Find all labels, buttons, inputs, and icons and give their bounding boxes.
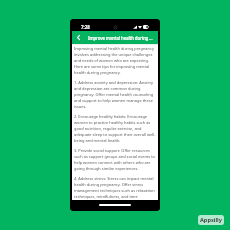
staticText: 3. Provide social support: Offer resourc…: [74, 148, 156, 171]
button[interactable]: Appsilly: [198, 215, 224, 225]
staticText: Improve mental health during …: [88, 35, 153, 41]
staticText: 7:28: [81, 24, 90, 30]
staticText: 4. Address stress: Stress can impact men…: [74, 176, 156, 199]
staticText: 2. Encourage healthy habits: Encourage w…: [74, 114, 156, 143]
button[interactable]: Back: [72, 31, 84, 44]
staticText: 1. Address anxiety and depression: Anxie…: [74, 80, 156, 109]
staticText: Improving mental health during pregnancy…: [74, 46, 156, 75]
staticText: Appsilly: [200, 216, 222, 224]
